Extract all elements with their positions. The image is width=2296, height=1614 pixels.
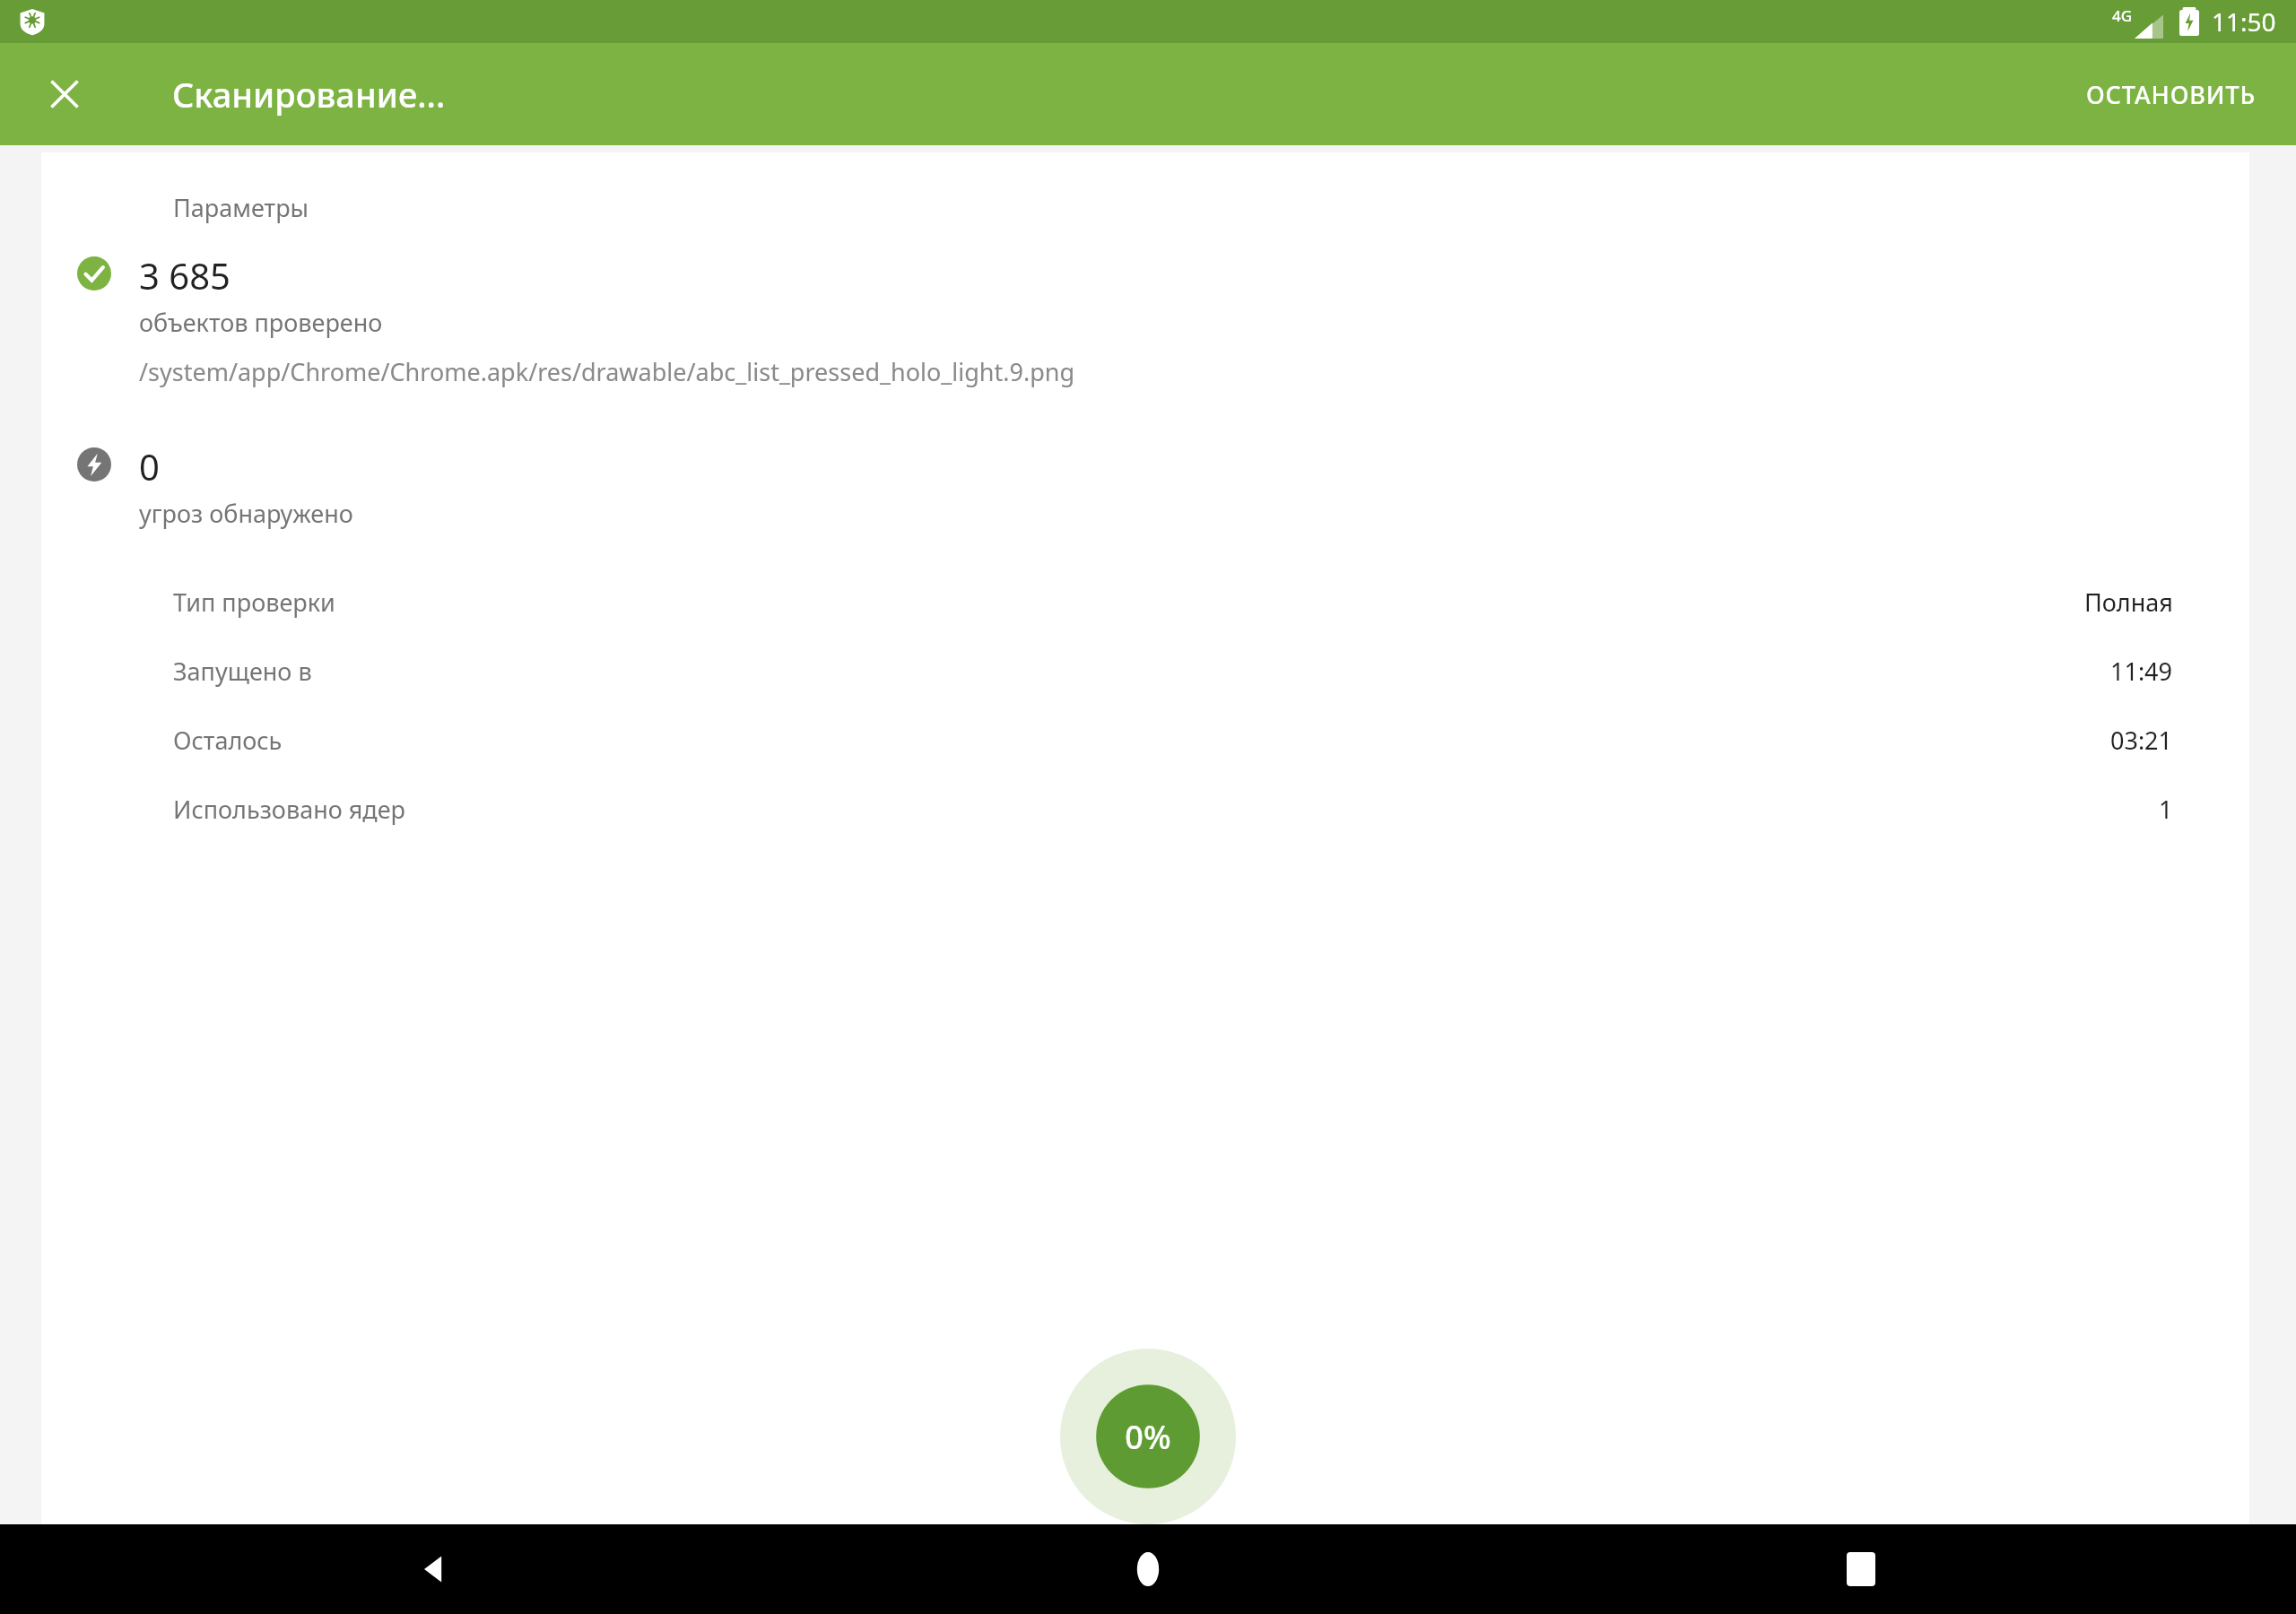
button[interactable]: Использовано ядер (41, 793, 2249, 826)
staticText: 4G (2112, 5, 2133, 26)
staticText: Использовано ядер (173, 793, 406, 826)
button[interactable]: Закрыть (32, 62, 97, 126)
staticText: /system/app/Chrome/Chrome.apk/res/drawab… (139, 355, 1075, 388)
button[interactable]: Назад (390, 1524, 480, 1614)
staticText: Параметры (173, 191, 309, 224)
staticText: Осталось (173, 724, 283, 757)
staticText: Запущено в (173, 655, 312, 688)
staticText: 0% (1125, 1415, 1171, 1459)
staticText: 11:50 (2212, 4, 2276, 39)
staticText: 11:49 (2110, 655, 2173, 688)
button[interactable]: Последние приложения (1816, 1524, 1906, 1614)
staticText: ОСТАНОВИТЬ (2086, 78, 2257, 111)
staticText: 0 (139, 442, 160, 490)
staticText: 03:21 (2110, 724, 2173, 757)
staticText: Тип проверки (173, 586, 335, 619)
staticText: 1 (2159, 793, 2173, 826)
staticText: Сканирование... (172, 71, 446, 117)
staticText: Полная (2084, 586, 2173, 619)
button[interactable]: Тип проверки (41, 586, 2249, 619)
staticText: угроз обнаружено (139, 497, 353, 530)
staticText: 3 685 (139, 251, 230, 299)
button[interactable]: ОСТАНОВИТЬ (2065, 62, 2278, 127)
button[interactable]: Прогресс сканирования 0% (1060, 1349, 1236, 1524)
staticText: объектов проверено (139, 306, 383, 339)
button[interactable]: Осталось (41, 724, 2249, 757)
button[interactable]: Запущено в (41, 655, 2249, 688)
button[interactable]: Главный экран (1103, 1524, 1193, 1614)
